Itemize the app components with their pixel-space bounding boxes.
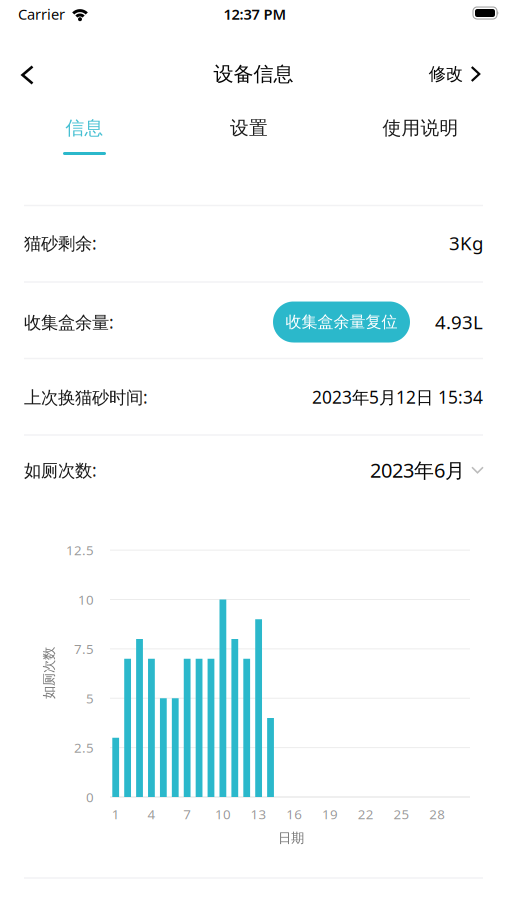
- staticText: 设备信息: [213, 62, 293, 86]
- staticText: 25: [393, 805, 409, 823]
- staticText: 28: [429, 805, 445, 823]
- staticText: 收集盒余量复位: [285, 312, 397, 332]
- staticText: 2023年6月: [370, 457, 465, 483]
- staticText: 10: [215, 805, 231, 823]
- staticText: 设置: [230, 116, 268, 139]
- button[interactable]: 信息: [57, 108, 111, 147]
- button[interactable]: 设置: [222, 108, 276, 147]
- staticText: 0: [86, 788, 94, 806]
- staticText: 16: [286, 805, 302, 823]
- staticText: 日期: [278, 830, 304, 846]
- staticText: 19: [322, 805, 338, 823]
- staticText: 13: [251, 805, 267, 823]
- staticText: 12.5: [66, 541, 94, 559]
- staticText: 3Kg: [449, 231, 483, 255]
- staticText: 1: [112, 805, 120, 823]
- staticText: 如厕次数: [23, 665, 75, 681]
- staticText: 7: [183, 805, 191, 823]
- staticText: 上次换猫砂时间:: [24, 385, 148, 408]
- button[interactable]: 修改: [429, 63, 479, 85]
- staticText: 2.5: [74, 739, 94, 756]
- staticText: 4.93L: [435, 310, 483, 334]
- staticText: Carrier: [18, 4, 65, 24]
- staticText: 22: [358, 805, 374, 823]
- staticText: 使用说明: [382, 116, 458, 139]
- button[interactable]: 收集盒余量复位: [273, 301, 410, 342]
- staticText: 12:37 PM: [223, 4, 286, 24]
- staticText: 猫砂剩余:: [24, 231, 97, 254]
- staticText: 5: [86, 689, 94, 707]
- staticText: 10: [78, 591, 94, 608]
- button[interactable]: 2023年6月: [370, 457, 483, 483]
- button[interactable]: 使用说明: [374, 108, 466, 147]
- staticText: 修改: [429, 63, 463, 85]
- button[interactable]: Back: [12, 56, 42, 93]
- staticText: 7.5: [74, 640, 94, 658]
- staticText: 信息: [65, 116, 103, 139]
- staticText: 4: [147, 805, 155, 823]
- staticText: 2023年5月12日 15:34: [312, 385, 483, 408]
- staticText: 如厕次数:: [24, 458, 97, 481]
- staticText: 收集盒余量:: [24, 310, 114, 333]
